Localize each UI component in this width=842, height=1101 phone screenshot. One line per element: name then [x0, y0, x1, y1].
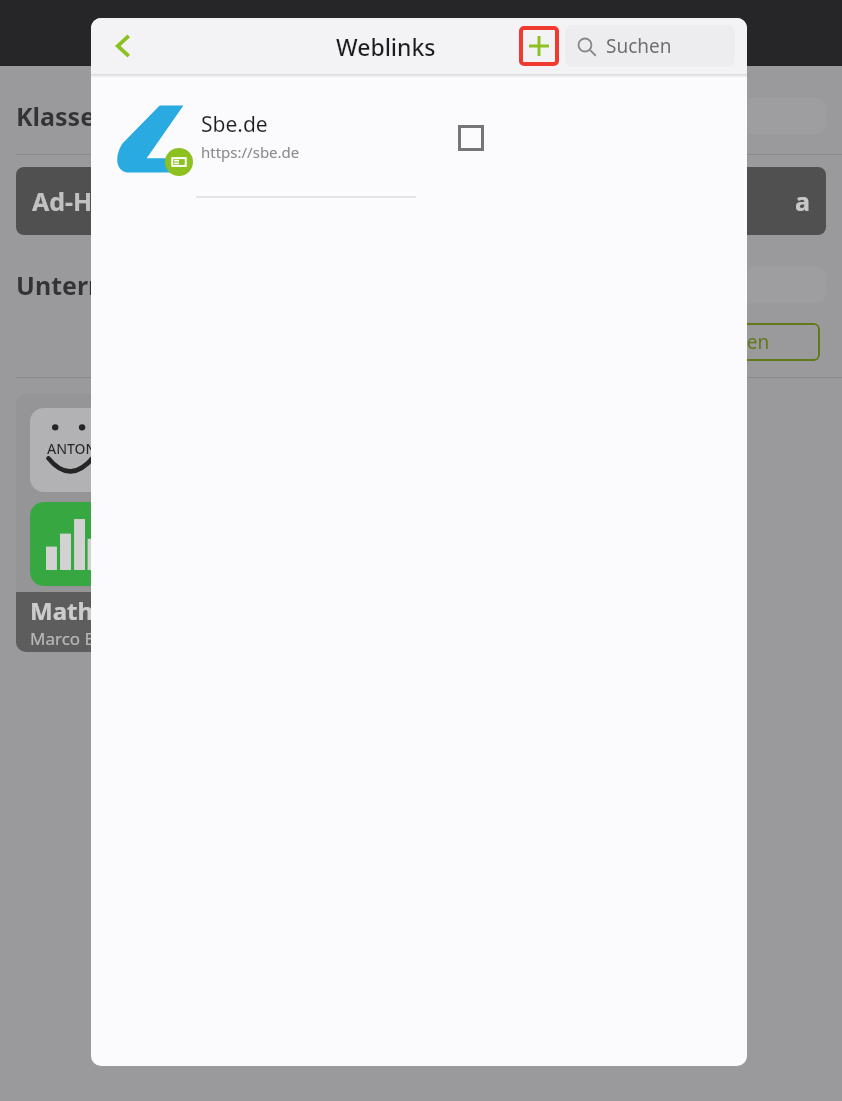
button[interactable]: ausuren: [645, 323, 820, 361]
staticText: Marco B: [30, 627, 96, 650]
button[interactable]: ANTON: [16, 394, 256, 652]
staticText: Ad-Hoc Klassenarbeit: [32, 184, 298, 218]
button[interactable]: Suchen: [565, 25, 735, 67]
staticText: Suchen: [606, 33, 672, 59]
staticText: Mathe: [30, 594, 108, 627]
staticText: Weblinks: [336, 31, 436, 62]
button[interactable]: Ad-Hoc Klassenarbeit: [16, 167, 826, 235]
button[interactable]: Weblink hinzufügen: [519, 26, 559, 66]
staticText: Klassenarbeiten: [16, 99, 218, 133]
staticText: https://sbe.de: [201, 142, 300, 162]
staticText: Unterricht: [16, 268, 147, 302]
staticText: Sbe.de: [201, 110, 268, 139]
button[interactable]: Auswählen: [447, 114, 495, 162]
staticText: ausuren: [696, 329, 770, 355]
staticText: ANTON: [47, 439, 97, 458]
button[interactable]: Zurück: [99, 22, 147, 70]
staticText: a: [795, 184, 810, 218]
